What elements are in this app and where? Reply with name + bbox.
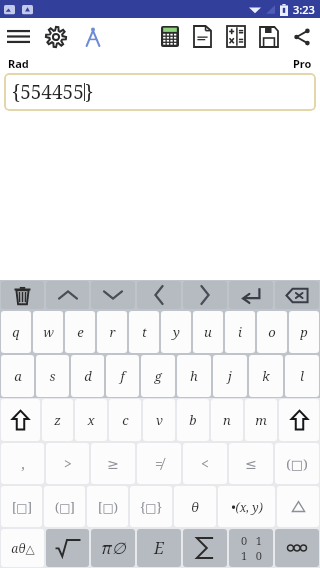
staticText: c xyxy=(122,411,129,429)
staticText: f xyxy=(120,367,125,385)
button[interactable]: y xyxy=(161,311,191,353)
button[interactable]: Geometry xyxy=(74,18,111,55)
staticText: d xyxy=(84,367,92,385)
button[interactable]: E xyxy=(137,529,181,567)
button[interactable]: e xyxy=(65,311,95,353)
button[interactable]: k xyxy=(249,355,283,397)
button[interactable]: Settings xyxy=(37,18,74,55)
button[interactable]: Menu xyxy=(0,18,37,55)
staticText: E xyxy=(154,537,164,559)
staticText: aθ△ xyxy=(11,540,35,556)
button[interactable]: Right xyxy=(183,281,227,309)
staticText: {□} xyxy=(140,499,162,515)
button[interactable]: j xyxy=(213,355,247,397)
staticText: , xyxy=(21,454,25,473)
button[interactable]: m xyxy=(245,399,277,441)
staticText: } xyxy=(85,79,94,105)
button[interactable]: ≥ xyxy=(91,443,135,484)
staticText: w xyxy=(43,323,54,341)
staticText: u xyxy=(204,323,212,341)
button[interactable]: Matrix xyxy=(229,529,273,567)
button[interactable]: [□) xyxy=(87,486,128,527)
button[interactable]: n xyxy=(211,399,243,441)
button[interactable]: ≠ xyxy=(137,443,181,484)
button[interactable]: x xyxy=(75,399,107,441)
button[interactable]: Shift xyxy=(279,399,319,441)
button[interactable]: i xyxy=(225,311,255,353)
button[interactable]: p xyxy=(289,311,319,353)
button[interactable]: w xyxy=(33,311,63,353)
staticText: 0 1 xyxy=(241,533,262,548)
staticText: p xyxy=(300,323,308,341)
button[interactable]: t xyxy=(129,311,159,353)
button[interactable]: Down xyxy=(91,281,135,309)
staticText: θ xyxy=(191,498,199,516)
staticText: 1 0 xyxy=(241,548,262,563)
button[interactable]: d xyxy=(71,355,104,397)
staticText: {554455 xyxy=(12,79,84,105)
button[interactable]: , xyxy=(1,443,44,484)
button[interactable]: {554455 xyxy=(4,73,316,111)
staticText: i xyxy=(238,323,242,341)
button[interactable]: Rad xyxy=(8,56,29,71)
button[interactable]: [□] xyxy=(1,486,42,527)
button[interactable]: Up xyxy=(46,281,89,309)
button[interactable]: g xyxy=(141,355,175,397)
staticText: s xyxy=(49,367,56,385)
button[interactable]: π∅ xyxy=(91,529,135,567)
button[interactable]: u xyxy=(193,311,223,353)
button[interactable]: Left xyxy=(137,281,181,309)
staticText: y xyxy=(173,323,180,341)
button[interactable]: < xyxy=(183,443,227,484)
button[interactable]: Shift xyxy=(1,399,40,441)
staticText: k xyxy=(262,367,270,385)
button[interactable]: f xyxy=(106,355,139,397)
button[interactable]: l xyxy=(285,355,319,397)
button[interactable]: h xyxy=(177,355,211,397)
staticText: r xyxy=(109,323,116,341)
staticText: e xyxy=(77,323,84,341)
staticText: ≥ xyxy=(107,456,119,472)
button[interactable]: c xyxy=(109,399,141,441)
button[interactable]: {□} xyxy=(130,486,172,527)
button[interactable]: Square root xyxy=(46,529,89,567)
staticText: x xyxy=(87,411,95,429)
button[interactable]: o xyxy=(257,311,287,353)
button[interactable]: Calculator xyxy=(153,20,186,53)
button[interactable]: Clear xyxy=(1,281,44,309)
button[interactable]: aθ△ xyxy=(1,529,44,567)
button[interactable]: q xyxy=(1,311,31,353)
button[interactable]: •(x, y) xyxy=(218,486,275,527)
staticText: π∅ xyxy=(101,537,126,559)
button[interactable]: Sum xyxy=(183,529,227,567)
staticText: [□] xyxy=(12,499,32,515)
button[interactable]: Share xyxy=(285,20,318,53)
button[interactable]: Operations xyxy=(219,20,252,53)
staticText: l xyxy=(300,367,304,385)
staticText: z xyxy=(54,411,61,429)
button[interactable]: Enter xyxy=(229,281,273,309)
button[interactable]: θ xyxy=(174,486,216,527)
button[interactable]: z xyxy=(42,399,73,441)
button[interactable]: (□) xyxy=(275,443,319,484)
button[interactable]: a xyxy=(1,355,34,397)
button[interactable]: Save xyxy=(252,20,285,53)
button[interactable]: s xyxy=(36,355,69,397)
button[interactable]: Log xyxy=(186,20,219,53)
button[interactable]: (□] xyxy=(44,486,85,527)
button[interactable]: v xyxy=(143,399,175,441)
button[interactable]: Backspace xyxy=(275,281,319,309)
staticText: •(x, y) xyxy=(231,499,263,515)
button[interactable]: ≤ xyxy=(229,443,273,484)
button[interactable]: > xyxy=(46,443,89,484)
staticText: ≠ xyxy=(155,454,163,473)
button[interactable]: b xyxy=(177,399,209,441)
button[interactable] xyxy=(277,486,319,527)
staticText: b xyxy=(189,411,197,429)
staticText: n xyxy=(223,411,231,429)
staticText: h xyxy=(190,367,198,385)
button[interactable]: More xyxy=(275,529,319,567)
button[interactable]: r xyxy=(97,311,127,353)
button[interactable]: Pro xyxy=(293,56,312,71)
staticText: > xyxy=(64,454,72,473)
